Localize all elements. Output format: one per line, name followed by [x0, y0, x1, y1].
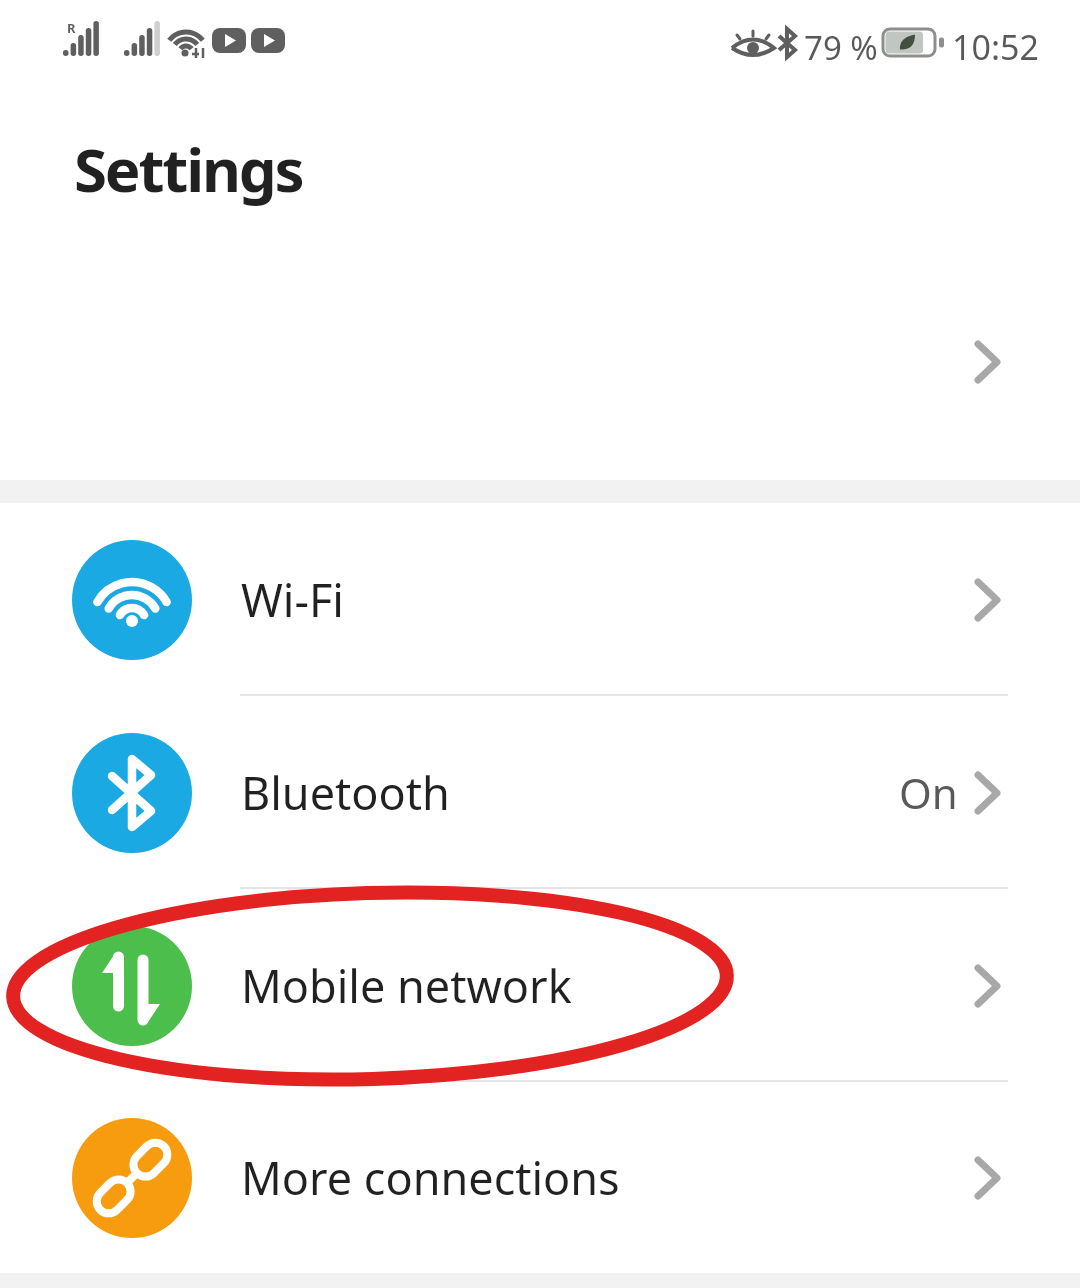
- staticText: Mobile network: [241, 955, 572, 1016]
- staticText: 10:52: [952, 24, 1039, 70]
- staticText: Wi-Fi: [241, 569, 344, 630]
- staticText: On: [899, 764, 958, 821]
- button[interactable]: Mobile network: [0, 889, 1080, 1082]
- staticText: R: [67, 19, 76, 37]
- staticText: 79 %: [804, 25, 878, 70]
- button[interactable]: More connections: [0, 1081, 1080, 1274]
- button[interactable]: [0, 250, 1080, 474]
- button[interactable]: Bluetooth: [0, 696, 1080, 889]
- staticText: Settings: [74, 128, 303, 210]
- button[interactable]: Wi-Fi: [0, 503, 1080, 696]
- staticText: More connections: [241, 1147, 620, 1208]
- staticText: Bluetooth: [241, 762, 450, 823]
